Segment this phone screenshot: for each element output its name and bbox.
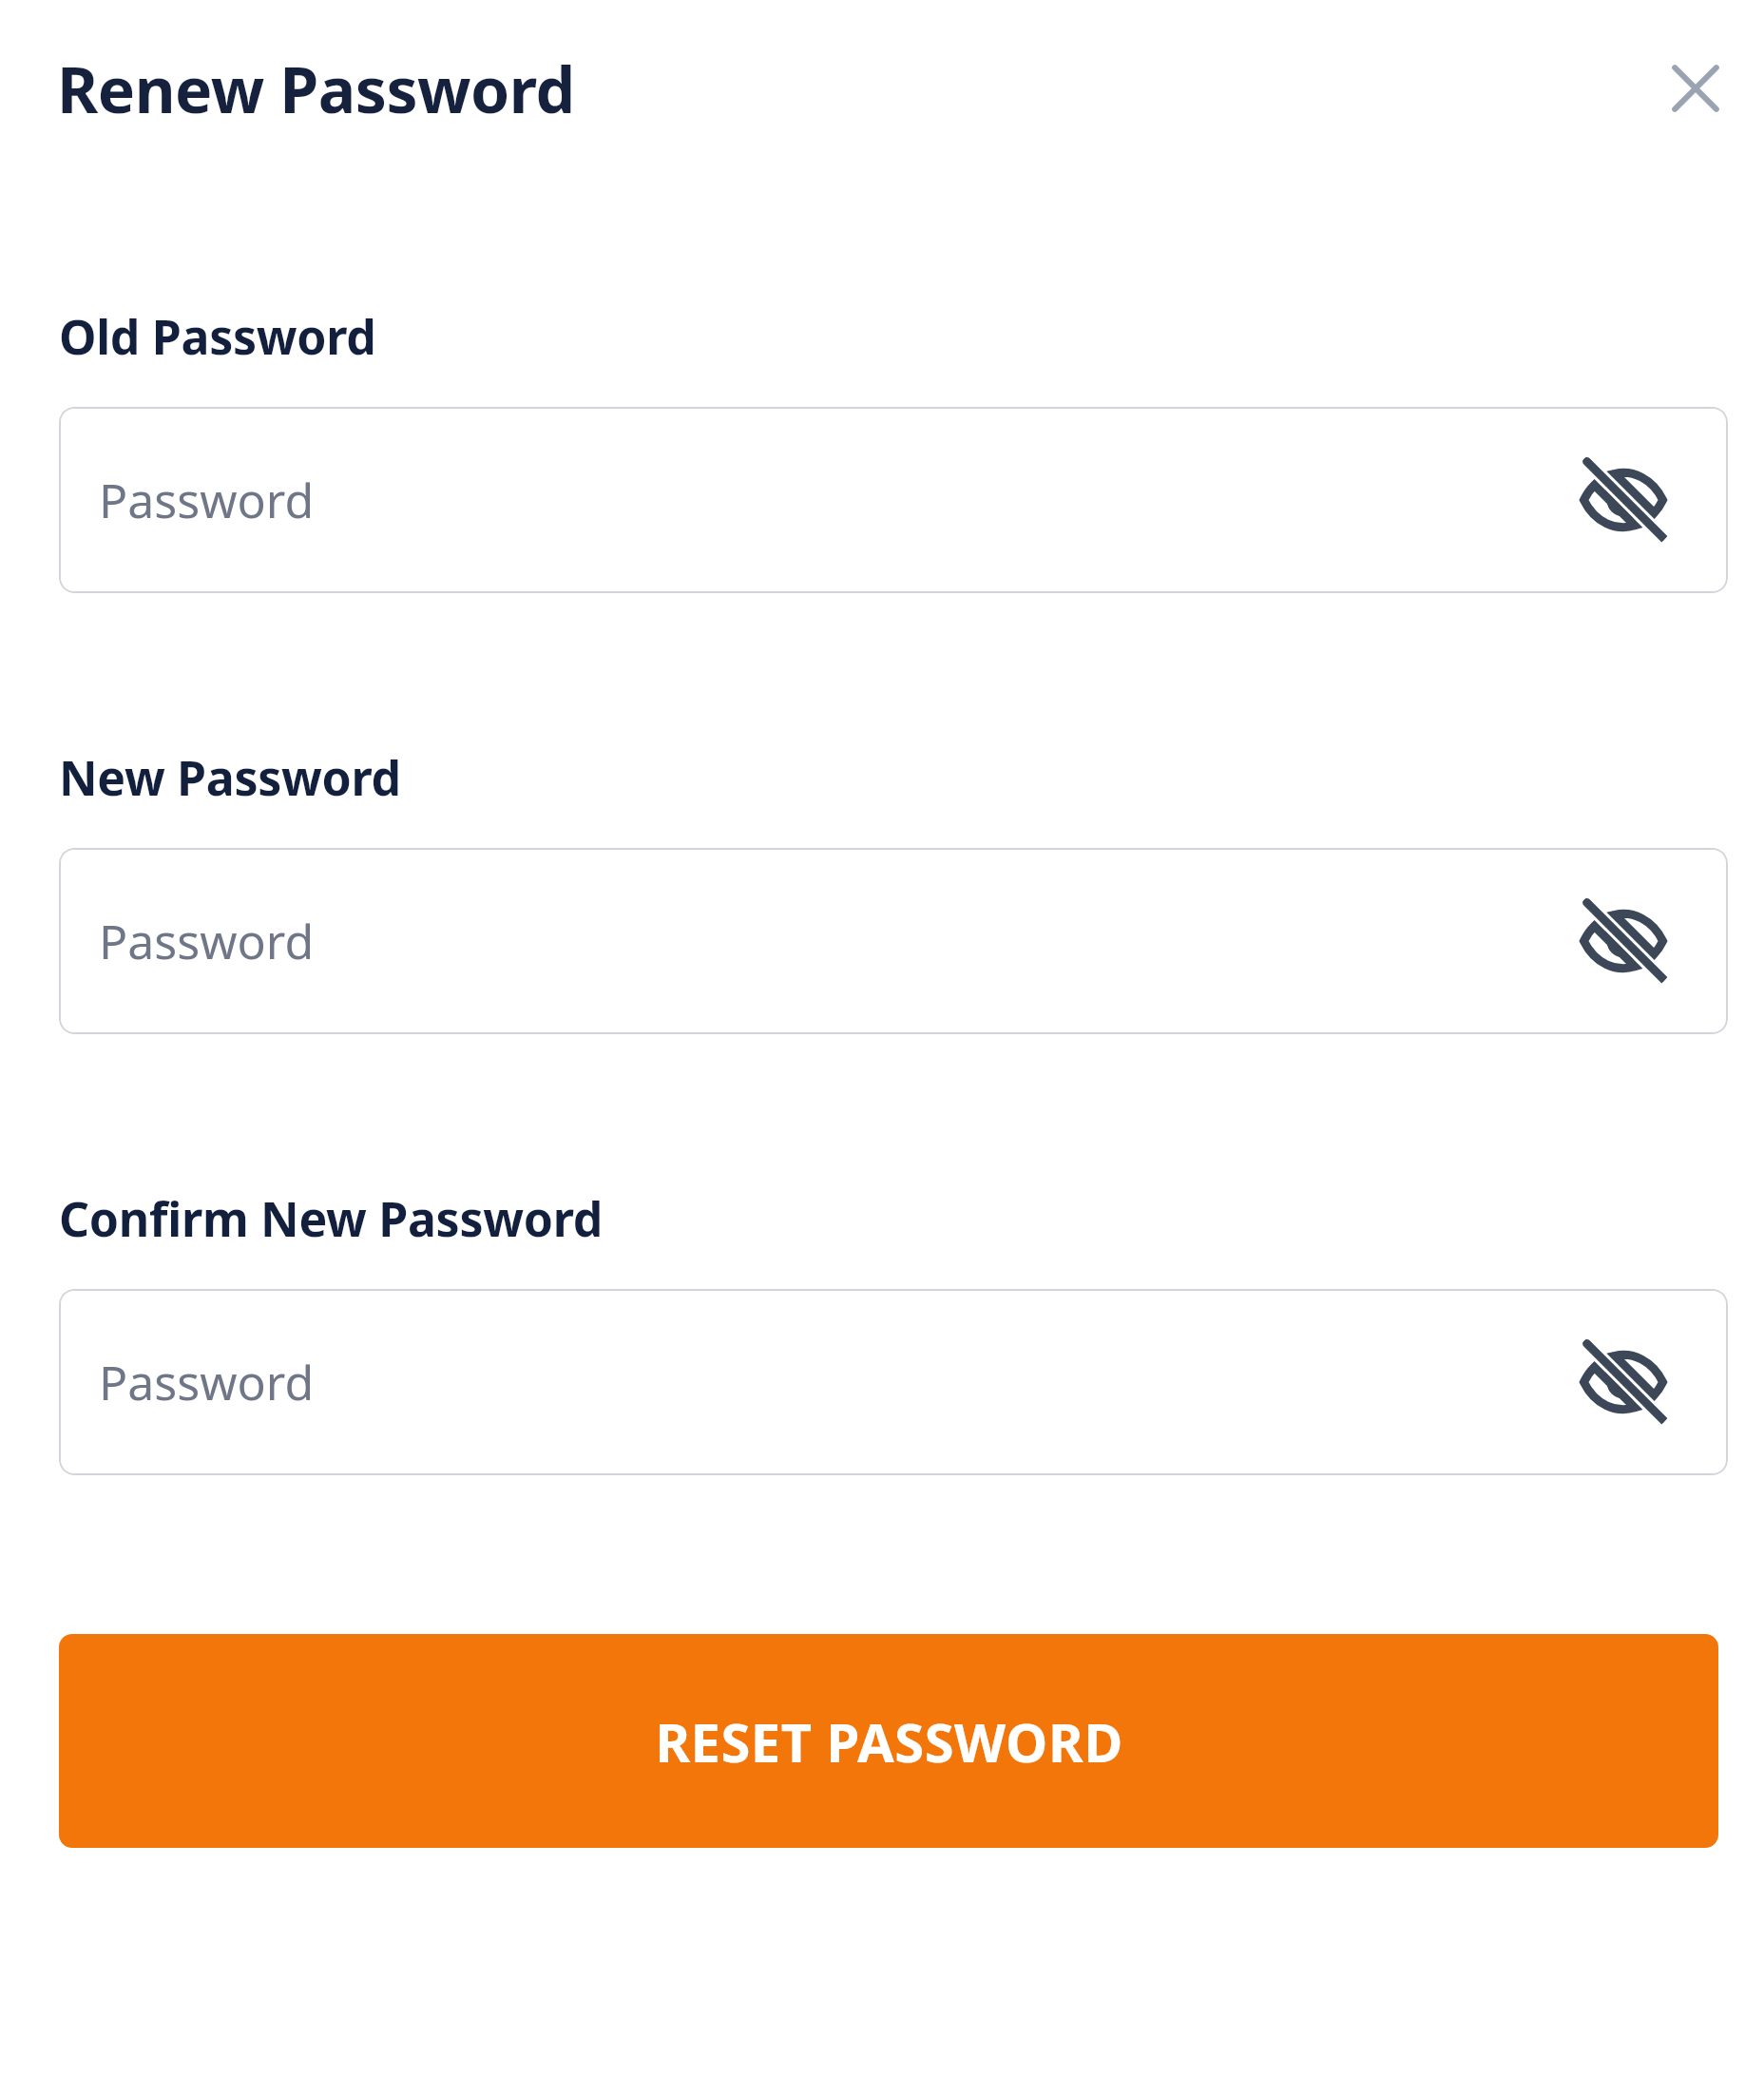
button[interactable]: RESET PASSWORD bbox=[59, 1634, 1718, 1848]
staticText: Password bbox=[99, 468, 315, 532]
button[interactable]: Password bbox=[59, 848, 1728, 1034]
button[interactable]: Show password bbox=[1566, 884, 1680, 998]
button[interactable]: Show password bbox=[1566, 443, 1680, 557]
staticText: New Password bbox=[59, 745, 401, 810]
staticText: Password bbox=[99, 909, 315, 973]
staticText: RESET PASSWORD bbox=[655, 1705, 1123, 1778]
button[interactable]: Password bbox=[59, 1289, 1728, 1475]
button[interactable]: Password bbox=[59, 407, 1728, 593]
button[interactable]: Close bbox=[1652, 45, 1739, 132]
staticText: Password bbox=[99, 1350, 315, 1414]
staticText: Confirm New Password bbox=[59, 1186, 603, 1251]
staticText: Renew Password bbox=[57, 46, 575, 131]
staticText: Old Password bbox=[59, 304, 376, 369]
button[interactable]: Show password bbox=[1566, 1325, 1680, 1439]
